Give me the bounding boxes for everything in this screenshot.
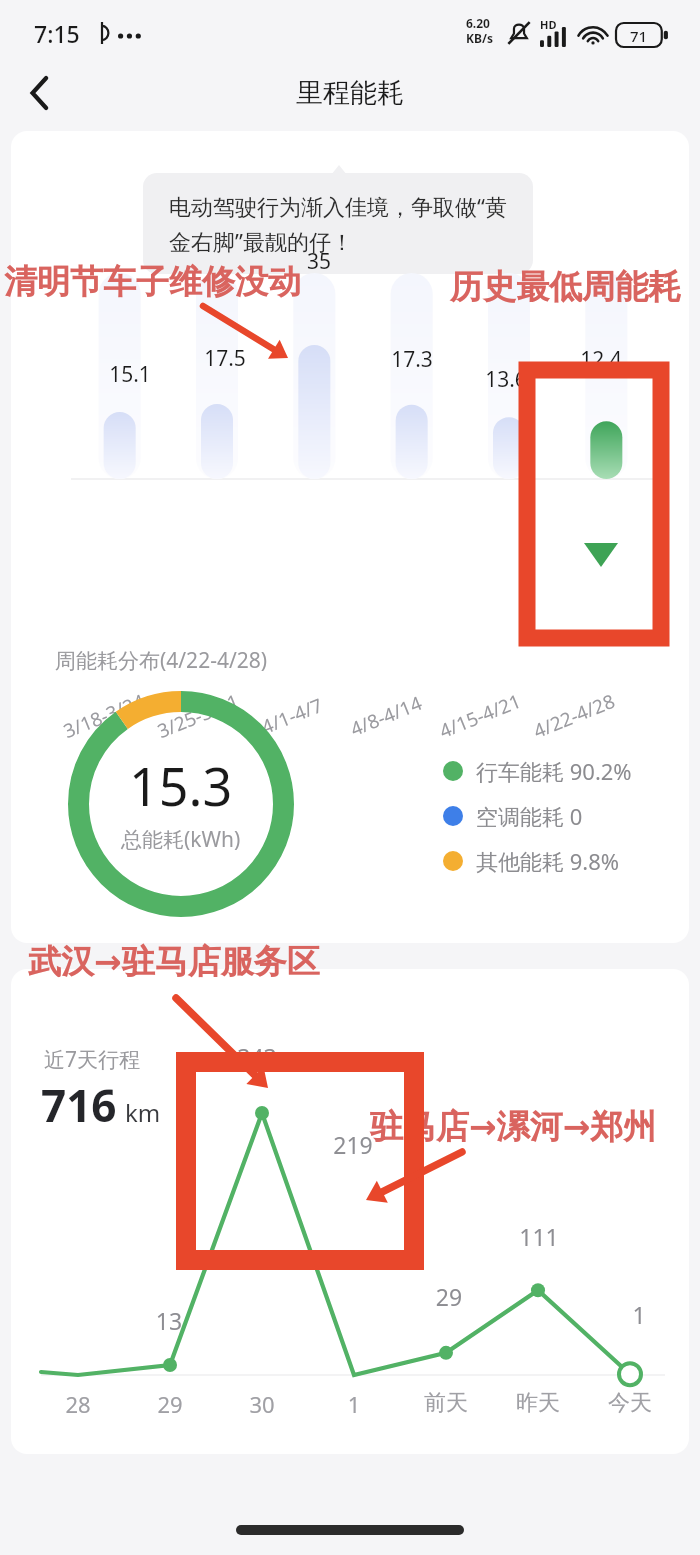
- button[interactable]: 其他能耗 9.8%: [443, 846, 620, 876]
- staticText: 71: [630, 26, 648, 46]
- staticText: 武汉→驻马店服务区: [28, 941, 320, 983]
- button[interactable]: Back: [14, 67, 66, 119]
- staticText: KB/s: [466, 30, 493, 46]
- staticText: 近7天行程: [44, 1045, 141, 1074]
- staticText: 6.20: [466, 15, 490, 31]
- staticText: 3/18-3/24: [48, 683, 160, 749]
- staticText: 电动驾驶行为渐入佳境，争取做“黄 金右脚”最靓的仔！: [169, 191, 507, 256]
- staticText: 4/8-4/14: [330, 683, 442, 749]
- staticText: 清明节车子维修没动: [4, 261, 301, 303]
- button[interactable]: 空调能耗 0: [443, 801, 583, 831]
- staticText: 12.4: [578, 345, 624, 374]
- staticText: 15.3: [129, 750, 233, 821]
- staticText: 里程能耗: [296, 76, 404, 110]
- staticText: HD: [540, 17, 557, 32]
- staticText: 行车能耗 90.2%: [476, 756, 632, 786]
- staticText: 总能耗(kWh): [121, 825, 241, 854]
- staticText: 7:15: [34, 18, 80, 49]
- staticText: 28: [48, 1389, 108, 1419]
- staticText: 前天: [416, 1389, 476, 1417]
- staticText: 111: [509, 1221, 569, 1252]
- staticText: 13: [139, 1305, 199, 1336]
- staticText: 4/1-4/7: [236, 683, 348, 749]
- staticText: 4/15-4/21: [424, 683, 536, 749]
- staticText: 13.6: [483, 365, 529, 394]
- staticText: 其他能耗 9.8%: [476, 846, 620, 876]
- staticText: 历史最低周能耗: [450, 266, 681, 308]
- staticText: 15.1: [107, 360, 153, 389]
- staticText: 219: [323, 1129, 383, 1160]
- staticText: 29: [419, 1281, 479, 1312]
- button[interactable]: 行车能耗 90.2%: [443, 756, 632, 786]
- staticText: 1: [324, 1389, 384, 1419]
- staticText: 29: [140, 1389, 200, 1419]
- staticText: km: [125, 1096, 161, 1129]
- staticText: 716: [41, 1075, 117, 1135]
- staticText: 17.5: [202, 344, 248, 373]
- staticText: 驻马店→漯河→郑州: [370, 1106, 657, 1148]
- staticText: 空调能耗 0: [476, 801, 583, 831]
- staticText: 35: [296, 247, 342, 276]
- staticText: 17.3: [389, 345, 435, 374]
- staticText: 30: [232, 1389, 292, 1419]
- staticText: 昨天: [508, 1389, 568, 1417]
- staticText: 343: [227, 1041, 287, 1072]
- staticText: 周能耗分布(4/22-4/28): [55, 646, 268, 675]
- staticText: 3/25-3/31: [142, 683, 254, 749]
- staticText: 今天: [600, 1389, 660, 1417]
- staticText: 1: [609, 1299, 669, 1330]
- staticText: 4/22-4/28: [518, 683, 630, 749]
